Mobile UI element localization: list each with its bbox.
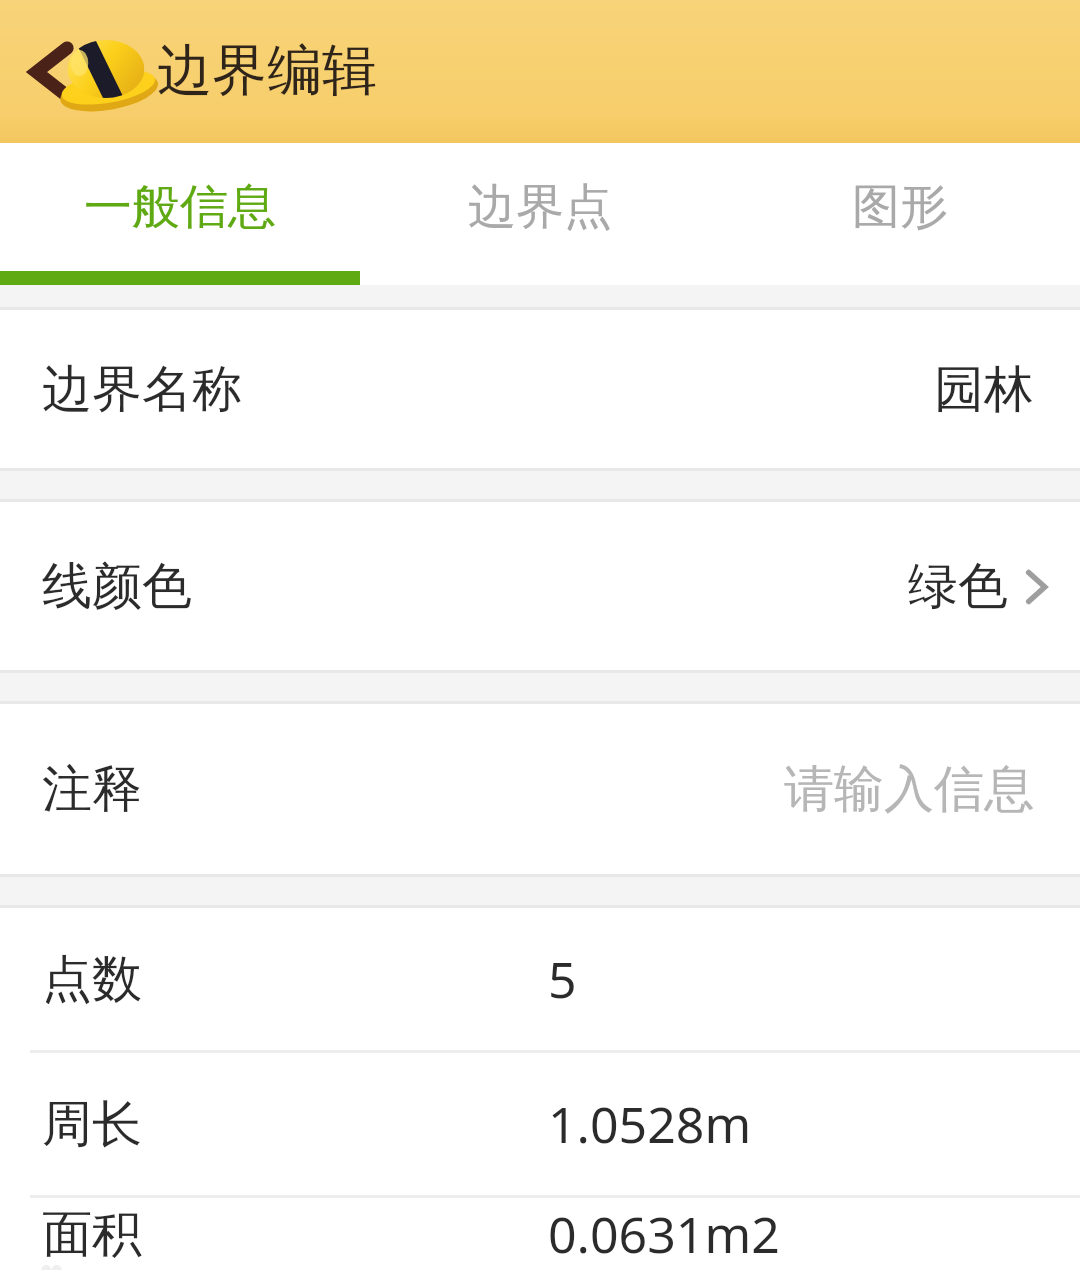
staticText: 园林 <box>934 358 1034 421</box>
staticText: 面积 <box>42 1203 142 1266</box>
staticText: 边界点 <box>468 177 612 237</box>
staticText: 点数 <box>42 948 142 1011</box>
button[interactable]: 边界点 <box>360 143 720 271</box>
staticText: 一般信息 <box>84 177 276 237</box>
button[interactable]: 一般信息 <box>0 143 360 271</box>
button[interactable]: 点数 <box>0 908 1080 1050</box>
button[interactable]: 面积 <box>0 1198 1080 1270</box>
staticText: 图形 <box>852 177 948 237</box>
staticText: 1.0528m <box>548 1090 752 1158</box>
button[interactable]: Back <box>0 17 86 127</box>
staticText: 周长 <box>42 1093 142 1156</box>
staticText: 请输入信息 <box>784 758 1034 821</box>
button[interactable]: 注释 <box>0 704 1080 874</box>
staticText: 边界编辑 <box>157 36 377 105</box>
staticText: 0.0631m2 <box>548 1200 780 1268</box>
staticText: 线颜色 <box>42 555 192 618</box>
staticText: 注释 <box>42 758 142 821</box>
button[interactable]: 周长 <box>0 1053 1080 1195</box>
staticText: 边界名称 <box>42 358 242 421</box>
button[interactable]: 图形 <box>720 143 1080 271</box>
button[interactable]: 线颜色 <box>0 502 1080 670</box>
staticText: 绿色 <box>908 555 1008 618</box>
staticText: 5 <box>548 945 577 1013</box>
